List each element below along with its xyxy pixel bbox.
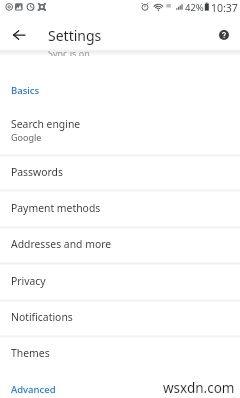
button[interactable]: Advanced xyxy=(0,381,240,397)
button[interactable]: Help and feedback xyxy=(211,22,237,48)
button[interactable]: Passwords xyxy=(0,155,240,190)
staticText: Payment methods xyxy=(11,201,101,215)
staticText: 42% xyxy=(185,1,204,14)
button[interactable]: Payment methods xyxy=(0,190,240,227)
button[interactable]: Search engine xyxy=(0,113,240,155)
button[interactable]: Navigate up xyxy=(6,22,32,48)
button[interactable]: Addresses and more xyxy=(0,227,240,263)
staticText: Search engine xyxy=(11,117,81,131)
staticText: Privacy xyxy=(11,274,46,288)
staticText: Settings xyxy=(48,26,102,45)
button[interactable]: Basics xyxy=(0,82,240,98)
staticText: Themes xyxy=(11,346,50,360)
staticText: Google xyxy=(11,131,42,143)
button[interactable]: Themes xyxy=(0,336,240,372)
staticText: Basics xyxy=(11,84,40,97)
button[interactable]: Privacy xyxy=(0,263,240,300)
staticText: Addresses and more xyxy=(11,237,112,251)
staticText: Passwords xyxy=(11,165,63,179)
staticText: wsxdn.com xyxy=(163,379,235,397)
staticText: 10:37 xyxy=(211,1,238,15)
staticText: Sync is on xyxy=(48,51,90,56)
staticText: Notifications xyxy=(11,310,73,324)
button[interactable]: Notifications xyxy=(0,300,240,336)
staticText: Advanced xyxy=(11,383,56,396)
